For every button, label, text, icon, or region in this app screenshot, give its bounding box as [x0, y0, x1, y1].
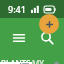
button[interactable]: Add plant	[39, 14, 59, 34]
staticText: 9:41	[8, 3, 26, 15]
button[interactable]: Search	[36, 25, 58, 51]
staticText: PLANTS	[1, 58, 31, 64]
button[interactable]: PLANTS	[0, 58, 32, 64]
button[interactable]: Navigation menu	[6, 25, 32, 51]
staticText: MY GARDEN	[32, 58, 64, 64]
button[interactable]: MY GARDEN	[32, 58, 64, 64]
